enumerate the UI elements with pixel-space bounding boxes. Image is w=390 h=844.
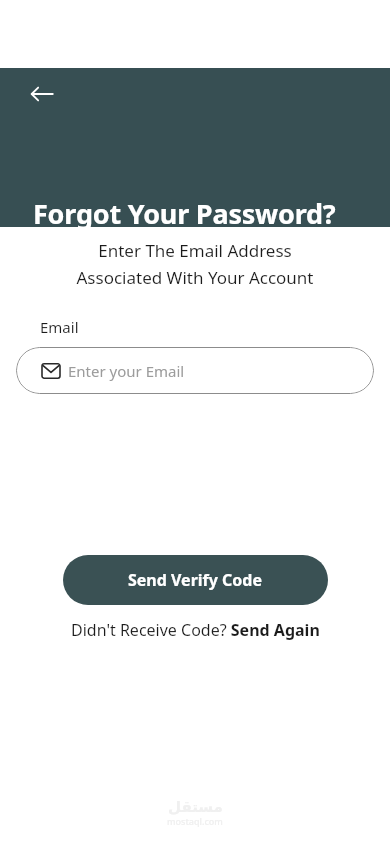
staticText: Forgot Your Password? <box>33 195 336 232</box>
button[interactable]: Enter your Email <box>16 347 374 394</box>
staticText: Didn't Receive Code? Send Again <box>71 619 320 641</box>
button[interactable]: Send Verify Code <box>63 555 328 605</box>
staticText: Send Verify Code <box>128 569 263 591</box>
staticText: Enter The Email Address Associated With … <box>0 239 390 289</box>
button[interactable]: Back <box>24 76 60 112</box>
staticText: mostaql.com <box>167 815 223 827</box>
button[interactable]: Didn't Receive Code? Send Again <box>71 619 320 641</box>
staticText: Enter your Email <box>68 361 185 381</box>
staticText: مستقل <box>168 798 223 815</box>
staticText: Email <box>40 317 79 337</box>
